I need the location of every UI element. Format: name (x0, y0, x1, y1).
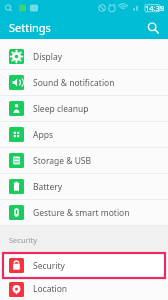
staticText: Location (33, 283, 68, 295)
button[interactable]: Apps (0, 122, 168, 148)
staticText: Security (33, 260, 65, 272)
staticText: Sound & notification (33, 77, 115, 89)
staticText: 14:39 (145, 3, 165, 13)
button[interactable]: Gesture & smart motion (0, 200, 168, 226)
staticText: Settings (9, 20, 51, 35)
button[interactable]: Display (0, 44, 168, 70)
staticText: Battery (33, 181, 63, 193)
staticText: Gesture & smart motion (33, 207, 130, 219)
staticText: Security (9, 235, 38, 245)
button[interactable]: Search (143, 18, 163, 38)
staticText: Storage & USB (33, 155, 92, 167)
button[interactable]: Security (3, 253, 165, 278)
button[interactable]: Sound & notification (0, 70, 168, 96)
button[interactable]: Battery (0, 174, 168, 200)
button[interactable]: Storage & USB (0, 148, 168, 174)
button[interactable]: Sleep cleanup (0, 96, 168, 122)
staticText: Sleep cleanup (33, 103, 89, 115)
staticText: Apps (33, 129, 53, 141)
button[interactable]: Location (0, 278, 168, 300)
staticText: Display (33, 51, 62, 63)
